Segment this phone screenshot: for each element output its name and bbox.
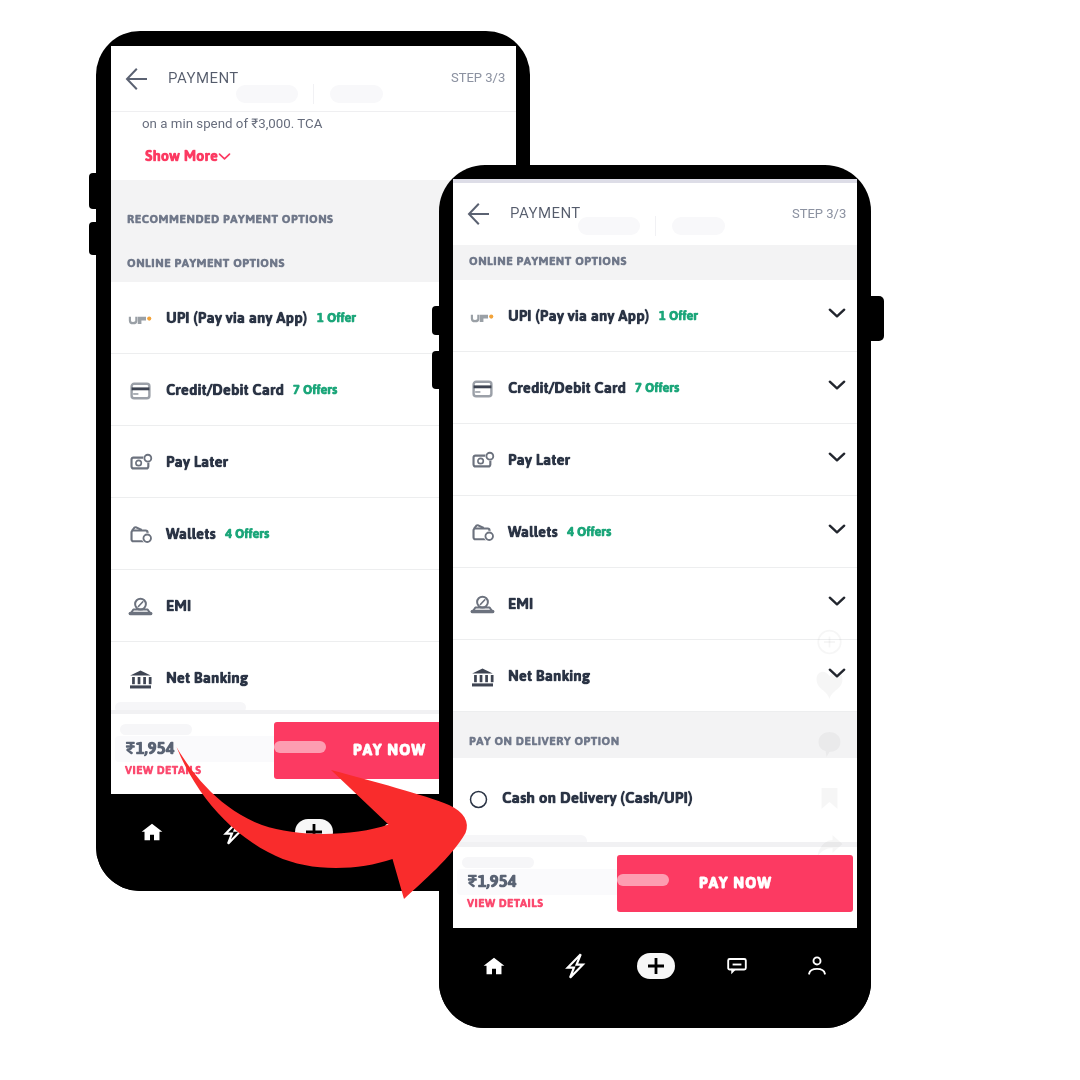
button[interactable]: Home [453, 951, 534, 981]
button[interactable]: Pay Later [111, 426, 516, 498]
button[interactable]: VIEW DETAILS [125, 759, 202, 781]
staticText: PAYMENT [510, 204, 581, 222]
staticText: 1 Offer [317, 305, 357, 330]
staticText: ₹1,954 [467, 865, 517, 897]
button[interactable]: Account [435, 817, 516, 847]
staticText: ₹1,954 [125, 732, 175, 764]
button[interactable]: VIEW DETAILS [467, 892, 544, 914]
button[interactable]: ONLINE PAYMENT OPTIONS [127, 251, 285, 274]
staticText: UPI (Pay via any App) [166, 303, 308, 332]
staticText: PAY NOW [353, 735, 426, 764]
button[interactable]: Back [115, 57, 159, 101]
staticText: Show More [145, 141, 218, 170]
staticText: PAY NOW [699, 868, 772, 897]
staticText: PAY ON DELIVERY OPTION [469, 729, 620, 752]
staticText: Net Banking [508, 661, 590, 690]
staticText: Wallets [508, 517, 558, 546]
button[interactable]: PAY NOW [617, 855, 853, 912]
staticText: EMI [508, 589, 534, 618]
staticText: Wallets [166, 519, 216, 548]
staticText: STEP 3/3 [451, 70, 506, 85]
staticText: Credit/Debit Card [166, 375, 284, 404]
staticText: STEP 3/3 [792, 206, 847, 221]
staticText: PAYMENT [168, 69, 239, 87]
staticText: UPI (Pay via any App) [508, 301, 650, 330]
button[interactable]: Messages [354, 817, 435, 847]
button[interactable]: PAY NOW [274, 722, 504, 779]
button[interactable]: UPI (Pay via any App) [453, 280, 857, 352]
button[interactable]: Credit/Debit Card [111, 354, 516, 426]
button[interactable]: Credit/Debit Card [453, 352, 857, 424]
button[interactable]: Pay Later [453, 424, 857, 496]
staticText: 4 Offers [225, 521, 270, 546]
staticText: EMI [166, 591, 192, 620]
staticText: 1 Offer [659, 303, 699, 328]
staticText: 7 Offers [293, 377, 338, 402]
staticText: Credit/Debit Card [508, 373, 626, 402]
staticText: 4 Offers [567, 519, 612, 544]
button[interactable]: Add [273, 817, 354, 847]
staticText: Cash on Delivery (Cash/UPI) [502, 783, 693, 813]
button[interactable]: Wallets [453, 496, 857, 568]
button[interactable]: Back [457, 192, 501, 236]
button[interactable]: Wallets [111, 498, 516, 570]
button[interactable]: Add [615, 951, 696, 981]
button[interactable]: UPI (Pay via any App) [111, 282, 516, 354]
staticText: Pay Later [166, 447, 229, 476]
button[interactable]: EMI [111, 570, 516, 642]
button[interactable]: Net Banking [453, 640, 857, 712]
button[interactable]: Messages [696, 951, 777, 981]
button[interactable]: Net Banking [111, 642, 516, 714]
button[interactable]: Cash on Delivery (Cash/UPI) [453, 758, 857, 840]
button[interactable]: EMI [453, 568, 857, 640]
staticText: Net Banking [166, 663, 248, 692]
staticText: 7 Offers [635, 375, 680, 400]
button[interactable]: Home [111, 817, 192, 847]
button[interactable]: Show More [145, 141, 231, 170]
button[interactable]: Deals [192, 817, 273, 847]
button[interactable]: RECOMMENDED PAYMENT OPTIONS [127, 207, 334, 230]
staticText: Pay Later [508, 445, 571, 474]
staticText: on a min spend of ₹3,000. TCA [142, 116, 323, 132]
staticText: ONLINE PAYMENT OPTIONS [469, 249, 627, 272]
button[interactable]: Deals [534, 951, 615, 981]
button[interactable]: Account [777, 951, 857, 981]
